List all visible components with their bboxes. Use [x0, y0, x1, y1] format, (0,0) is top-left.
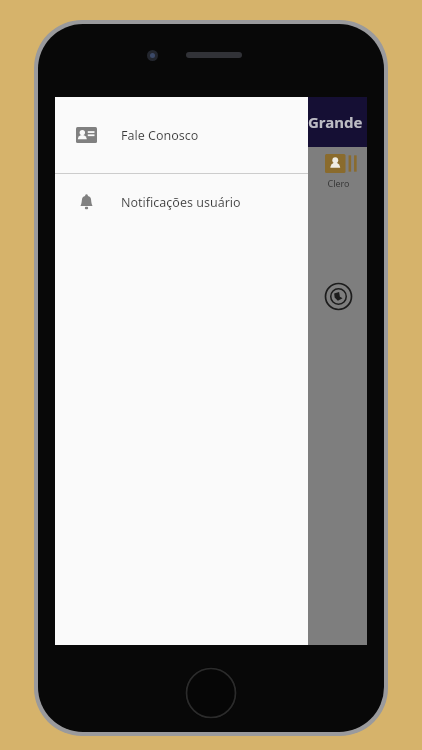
button[interactable]: Notificações usuário	[55, 174, 308, 230]
button[interactable]: Idioma	[323, 281, 354, 312]
staticText: Clero	[327, 177, 350, 189]
staticText: Notificações usuário	[121, 194, 241, 211]
button[interactable]: Home	[185, 667, 237, 719]
button[interactable]: Fale Conosco	[55, 97, 308, 173]
button[interactable]: Clero	[309, 149, 367, 189]
staticText: Fale Conosco	[121, 127, 199, 144]
staticText: Campo Grande	[252, 112, 363, 132]
